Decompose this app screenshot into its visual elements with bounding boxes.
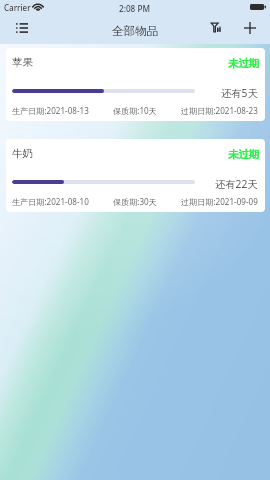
staticText: 生产日期:2021-08-10 bbox=[12, 196, 89, 207]
button[interactable]: Menu bbox=[3, 17, 40, 44]
staticText: 生产日期:2021-08-13 bbox=[12, 105, 89, 116]
staticText: 全部物品 bbox=[112, 24, 159, 39]
staticText: 过期日期:2021-09-09 bbox=[181, 196, 258, 207]
staticText: 未过期 bbox=[228, 148, 260, 161]
button[interactable]: 苹果 bbox=[6, 48, 265, 121]
staticText: 保质期:30天 bbox=[113, 196, 157, 207]
staticText: 保质期:10天 bbox=[113, 105, 157, 116]
button[interactable]: Add bbox=[233, 17, 270, 44]
staticText: 还有5天 bbox=[221, 86, 258, 100]
staticText: 过期日期:2021-08-23 bbox=[181, 105, 258, 116]
staticText: Carrier bbox=[4, 2, 31, 13]
staticText: 苹果 bbox=[12, 56, 34, 69]
staticText: 2:08 PM bbox=[119, 3, 150, 14]
staticText: 未过期 bbox=[228, 57, 260, 70]
staticText: 还有22天 bbox=[215, 177, 258, 191]
button[interactable]: 牛奶 bbox=[6, 139, 265, 212]
staticText: 牛奶 bbox=[12, 147, 34, 160]
button[interactable]: Filter bbox=[199, 17, 231, 44]
